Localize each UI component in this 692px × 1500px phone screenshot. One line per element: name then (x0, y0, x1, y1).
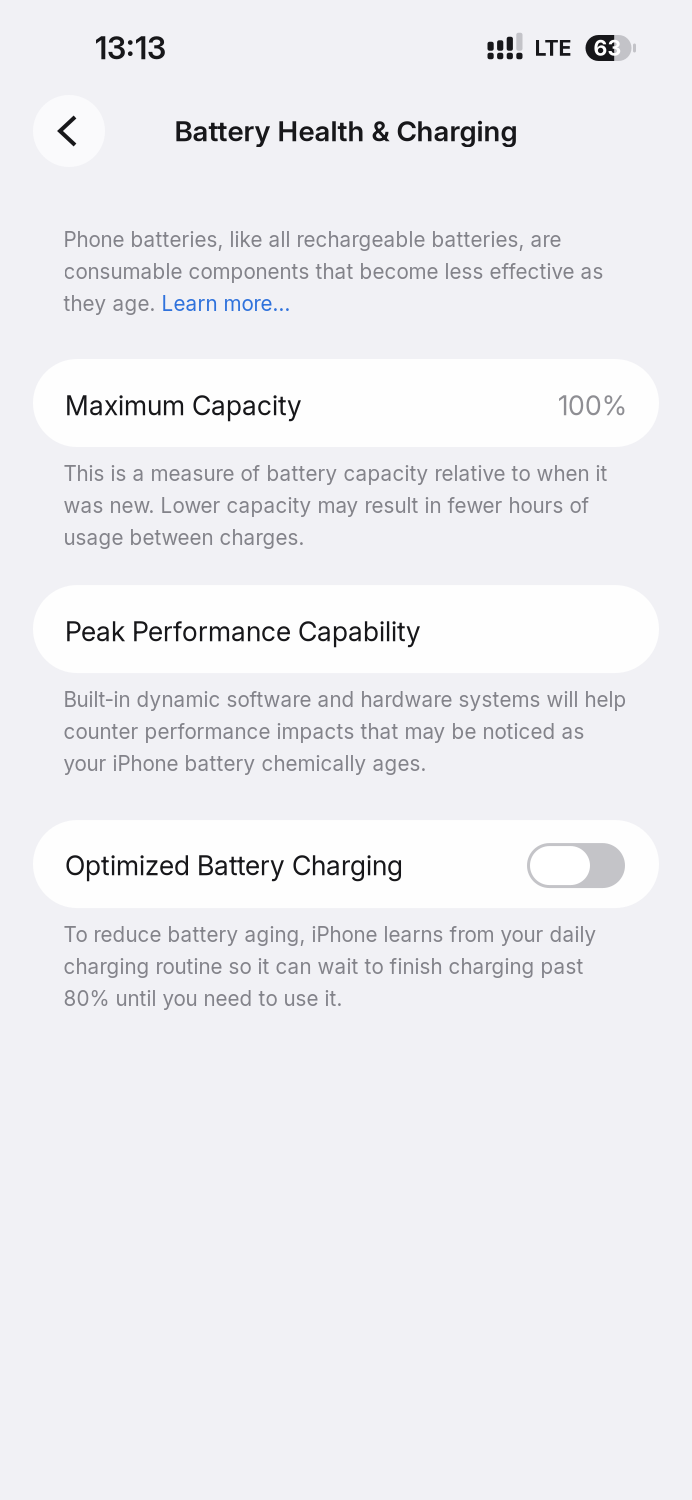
staticText: To reduce battery aging, iPhone learns f… (63, 922, 596, 1011)
staticText: 100% (558, 389, 627, 422)
button[interactable]: Back (33, 95, 105, 167)
staticText: they age. (63, 291, 161, 316)
staticText: LTE (534, 35, 571, 61)
staticText: Battery Health & Charging (174, 114, 517, 148)
staticText: 13:13 (95, 29, 166, 66)
staticText: Phone batteries, like all rechargeable b… (63, 227, 561, 252)
button[interactable]: Peak Performance Capability (33, 585, 659, 673)
staticText: Built-in dynamic software and hardware s… (63, 687, 626, 776)
staticText: Optimized Battery Charging (65, 849, 403, 882)
button[interactable]: Maximum Capacity (33, 359, 659, 447)
staticText: This is a measure of battery capacity re… (63, 461, 607, 550)
button[interactable]: Learn more... (161, 291, 290, 316)
staticText: 63 (593, 35, 621, 61)
staticText: consumable components that become less e… (63, 259, 603, 284)
button[interactable]: Optimized Battery Charging (33, 820, 659, 908)
staticText: Maximum Capacity (65, 389, 302, 422)
staticText: Peak Performance Capability (65, 615, 421, 648)
staticText: Learn more... (161, 291, 290, 316)
